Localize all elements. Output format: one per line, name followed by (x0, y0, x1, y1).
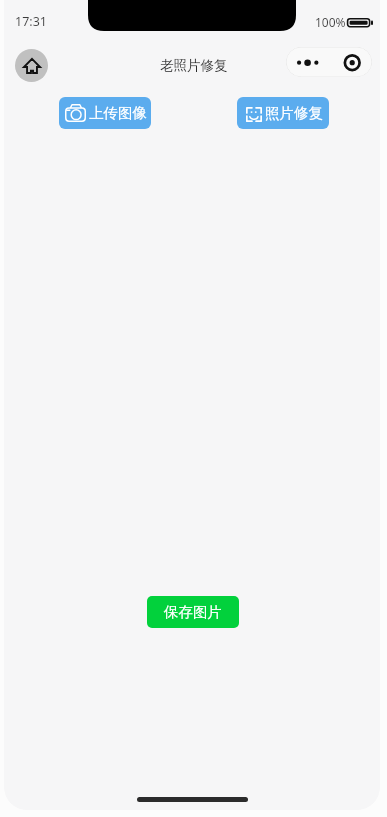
button[interactable]: Menu (286, 47, 372, 77)
button[interactable]: Home (15, 49, 48, 82)
staticText: 老照片修复 (160, 57, 228, 74)
button[interactable]: 上传图像 (59, 97, 151, 129)
button[interactable]: 保存图片 (147, 596, 239, 628)
staticText: 上传图像 (89, 104, 147, 122)
staticText: 保存图片 (164, 603, 222, 621)
staticText: 17:31 (15, 13, 47, 30)
staticText: 照片修复 (265, 104, 323, 122)
button[interactable]: 照片修复 (237, 97, 329, 129)
staticText: 100% (315, 14, 346, 30)
